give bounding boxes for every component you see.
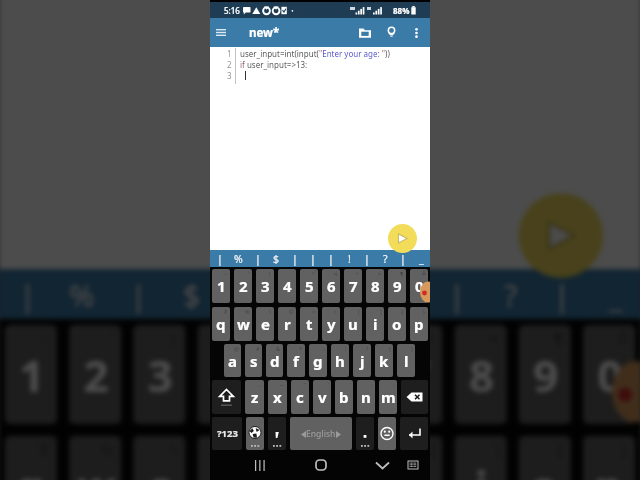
button[interactable]: |	[394, 250, 412, 267]
button[interactable]: &	[266, 344, 283, 377]
button[interactable]: %	[229, 250, 248, 267]
button[interactable]: ₮	[5, 436, 57, 480]
button[interactable]: Shift	[212, 380, 241, 414]
button[interactable]: |	[358, 250, 376, 267]
button[interactable]: !	[340, 250, 358, 267]
button[interactable]: \	[133, 436, 186, 480]
button[interactable]: Hide keyboard	[364, 450, 400, 480]
button[interactable]: ∆	[583, 325, 635, 424]
staticText: !	[345, 345, 347, 352]
button[interactable]: ]	[454, 436, 507, 480]
button[interactable]: *	[287, 344, 305, 377]
button[interactable]: :	[379, 380, 397, 414]
button[interactable]: ©	[197, 436, 250, 480]
button[interactable]: ?	[353, 344, 371, 377]
button[interactable]: %	[234, 307, 252, 341]
button[interactable]: √	[300, 269, 318, 303]
button[interactable]: |	[0, 269, 54, 319]
button[interactable]: {	[519, 436, 571, 480]
button[interactable]: ₮	[212, 307, 230, 341]
button[interactable]: |	[210, 250, 229, 267]
button[interactable]: |	[273, 269, 326, 319]
button[interactable]: |	[256, 269, 274, 303]
button[interactable]: π	[322, 269, 340, 303]
button[interactable]: ¶	[388, 269, 406, 303]
button[interactable]: ;	[357, 380, 375, 414]
button[interactable]: Comma	[268, 417, 286, 450]
button[interactable]: ‘	[313, 380, 331, 414]
button[interactable]: ©	[278, 307, 296, 341]
button[interactable]: ÷	[390, 325, 443, 424]
button[interactable]: ∆	[410, 269, 428, 303]
button[interactable]: |	[286, 250, 304, 267]
button[interactable]: π	[326, 325, 378, 424]
button[interactable]: Home	[303, 450, 339, 480]
button[interactable]: Change keyboard	[400, 450, 426, 480]
button[interactable]: ’	[335, 380, 353, 414]
button[interactable]: "	[291, 380, 309, 414]
button[interactable]: |	[322, 250, 340, 267]
button[interactable]: ~	[212, 269, 230, 303]
button[interactable]: |	[431, 269, 484, 319]
button[interactable]: (	[375, 344, 393, 377]
button[interactable]: \	[256, 307, 274, 341]
button[interactable]: —	[268, 380, 287, 414]
button[interactable]: ]	[366, 307, 384, 341]
button[interactable]: |	[133, 325, 186, 424]
button[interactable]: $	[267, 250, 286, 267]
button[interactable]: Navigation menu	[210, 18, 232, 47]
button[interactable]: >	[322, 307, 340, 341]
button[interactable]: -	[309, 344, 327, 377]
button[interactable]: ÷	[344, 269, 362, 303]
button[interactable]: More options	[405, 18, 427, 47]
button[interactable]: Emoji	[378, 417, 396, 450]
button[interactable]: }	[410, 307, 428, 341]
button[interactable]: _	[589, 269, 640, 319]
button[interactable]: √	[262, 325, 314, 424]
button[interactable]: ×	[366, 269, 384, 303]
button[interactable]: Enter	[400, 417, 428, 450]
button[interactable]: |	[248, 250, 267, 267]
button[interactable]: Hints	[380, 18, 402, 47]
button[interactable]: |	[304, 250, 322, 267]
button[interactable]: Languages	[246, 417, 264, 450]
button[interactable]: ?	[483, 269, 536, 319]
button[interactable]: _	[412, 250, 430, 267]
button[interactable]: Backspace	[401, 380, 428, 414]
button[interactable]: @	[224, 344, 241, 377]
button[interactable]: |	[536, 269, 589, 319]
button[interactable]: Recent apps	[242, 450, 278, 480]
button[interactable]: }	[583, 436, 635, 480]
button[interactable]: [	[344, 307, 362, 341]
button[interactable]: ~	[5, 325, 57, 424]
button[interactable]: <	[300, 307, 318, 341]
button[interactable]: Run	[388, 224, 417, 253]
button[interactable]: )	[397, 344, 415, 377]
button[interactable]: `	[234, 269, 252, 303]
button[interactable]: |	[110, 269, 165, 319]
button[interactable]: Period	[356, 417, 374, 450]
button[interactable]: Run	[519, 193, 603, 278]
button[interactable]: ×	[454, 325, 507, 424]
button[interactable]: Space	[290, 417, 352, 450]
button[interactable]: %	[54, 269, 110, 319]
button[interactable]: …	[245, 380, 264, 414]
button[interactable]: #	[245, 344, 262, 377]
button[interactable]: ·	[197, 325, 250, 424]
button[interactable]: ?	[376, 250, 394, 267]
button[interactable]: ?123	[212, 417, 242, 450]
button[interactable]: |	[326, 269, 378, 319]
button[interactable]: `	[69, 325, 121, 424]
button[interactable]: !	[378, 269, 431, 319]
button[interactable]: !	[331, 344, 349, 377]
button[interactable]: %	[69, 436, 121, 480]
button[interactable]: <	[262, 436, 314, 480]
button[interactable]: $	[165, 269, 221, 319]
button[interactable]: >	[326, 436, 378, 480]
button[interactable]: Open file	[353, 18, 377, 47]
button[interactable]: {	[388, 307, 406, 341]
button[interactable]: |	[221, 269, 273, 319]
button[interactable]: [	[390, 436, 443, 480]
button[interactable]: ·	[278, 269, 296, 303]
button[interactable]: ¶	[519, 325, 571, 424]
